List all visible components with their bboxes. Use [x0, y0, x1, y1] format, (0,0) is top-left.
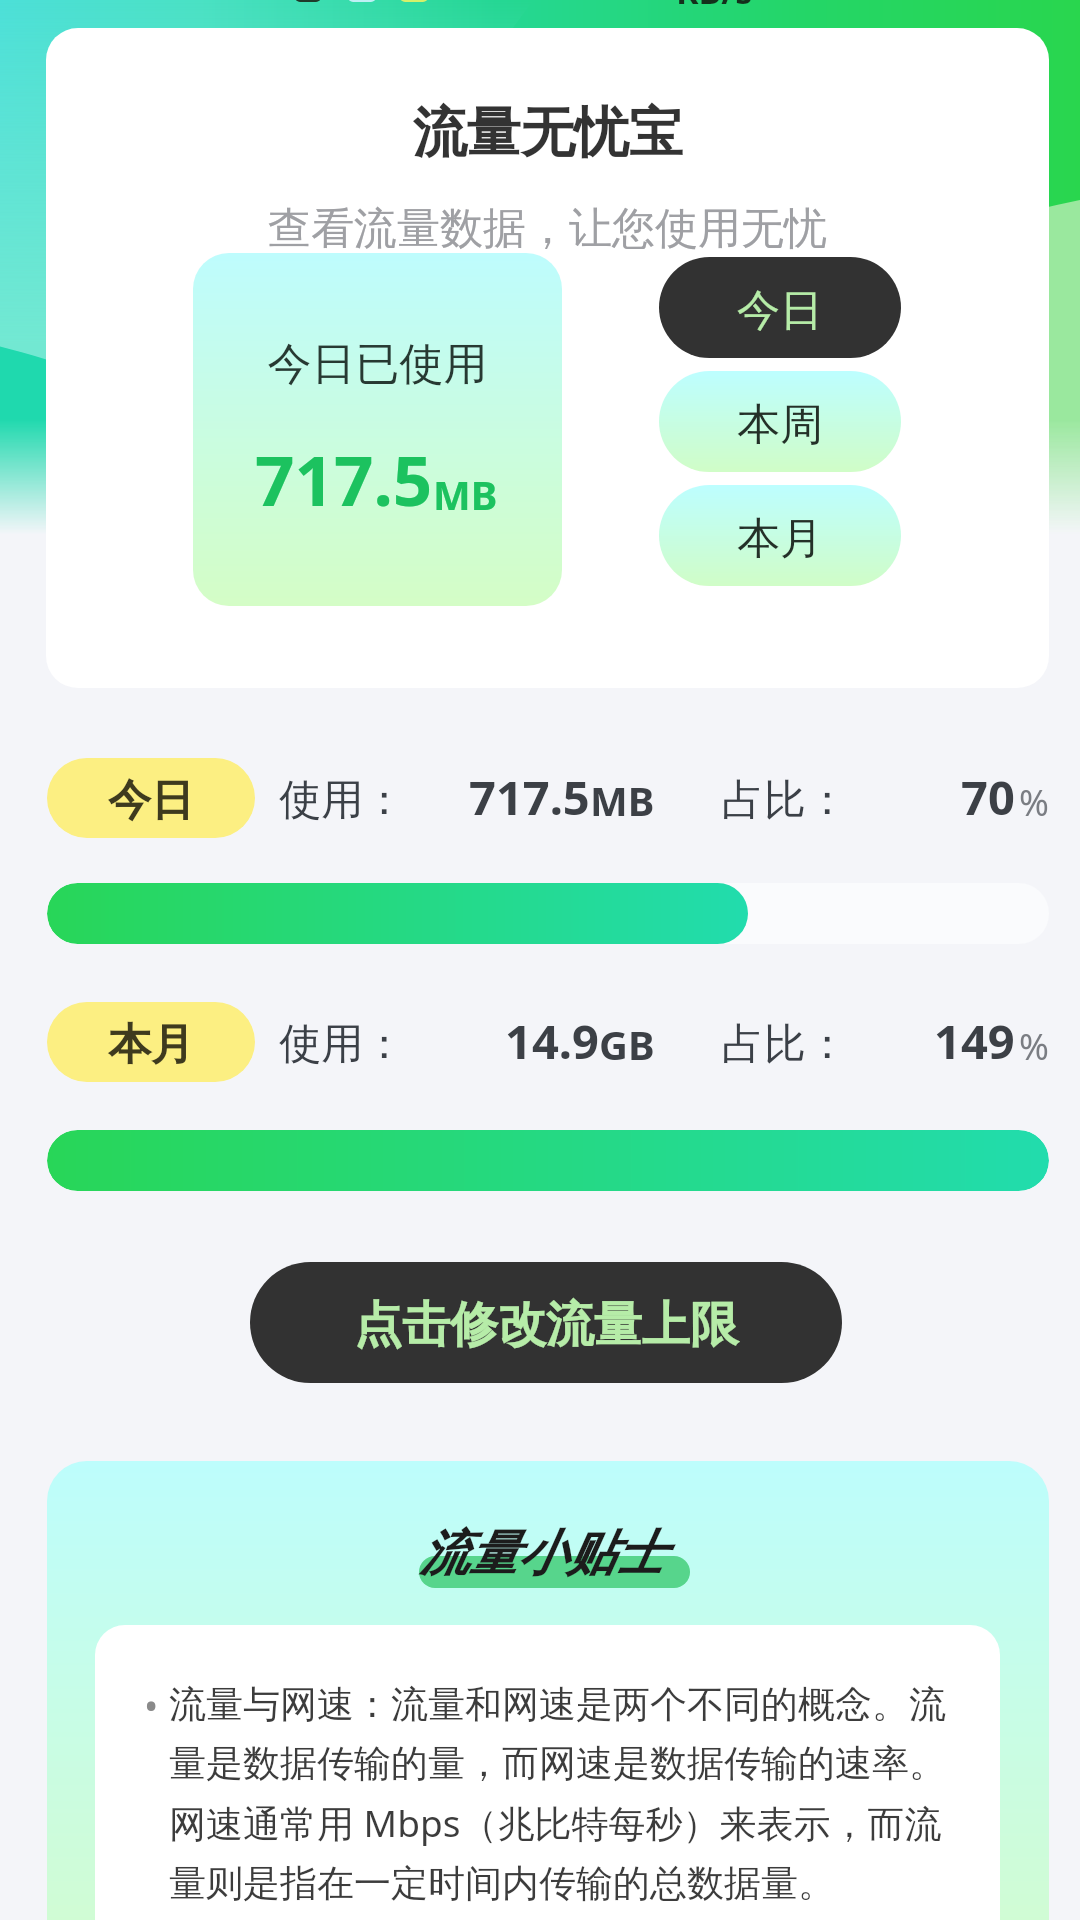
staticText: 今日: [108, 774, 194, 828]
staticText: 717.5: [255, 432, 433, 526]
staticText: MB: [590, 773, 655, 827]
staticText: 占比：: [722, 1018, 848, 1071]
button[interactable]: 本周: [659, 371, 901, 472]
staticText: %: [1019, 1022, 1049, 1071]
staticText: 流量无忧宝: [46, 99, 1049, 167]
button[interactable]: 点击修改流量上限: [250, 1262, 842, 1383]
staticText: 717.5: [469, 765, 590, 829]
staticText: 本月: [737, 512, 823, 566]
staticText: 本周: [737, 398, 823, 452]
staticText: KB/s: [676, 0, 753, 14]
staticText: 查看流量数据，让您使用无忧: [46, 202, 1049, 256]
staticText: 今日: [737, 284, 823, 338]
staticText: 今日已使用: [193, 337, 562, 392]
staticText: 流量小贴士: [41, 1523, 1043, 1585]
staticText: 点击修改流量上限: [354, 1295, 738, 1355]
staticText: 本月: [108, 1018, 194, 1072]
staticText: 使用：: [279, 1018, 405, 1071]
staticText: 70: [961, 765, 1015, 829]
staticText: •: [144, 1679, 159, 1731]
staticText: MB: [433, 467, 498, 521]
staticText: 流量与网速：流量和网速是两个不同的概念。流量是数据传输的量，而网速是数据传输的速…: [169, 1681, 959, 1907]
staticText: GB: [599, 1017, 655, 1071]
staticText: 占比：: [722, 774, 848, 827]
staticText: 149: [934, 1009, 1015, 1073]
button[interactable]: 本月: [659, 485, 901, 586]
staticText: %: [1019, 778, 1049, 827]
button[interactable]: 今日: [659, 257, 901, 358]
staticText: 使用：: [279, 774, 405, 827]
staticText: 14.9: [505, 1009, 599, 1073]
